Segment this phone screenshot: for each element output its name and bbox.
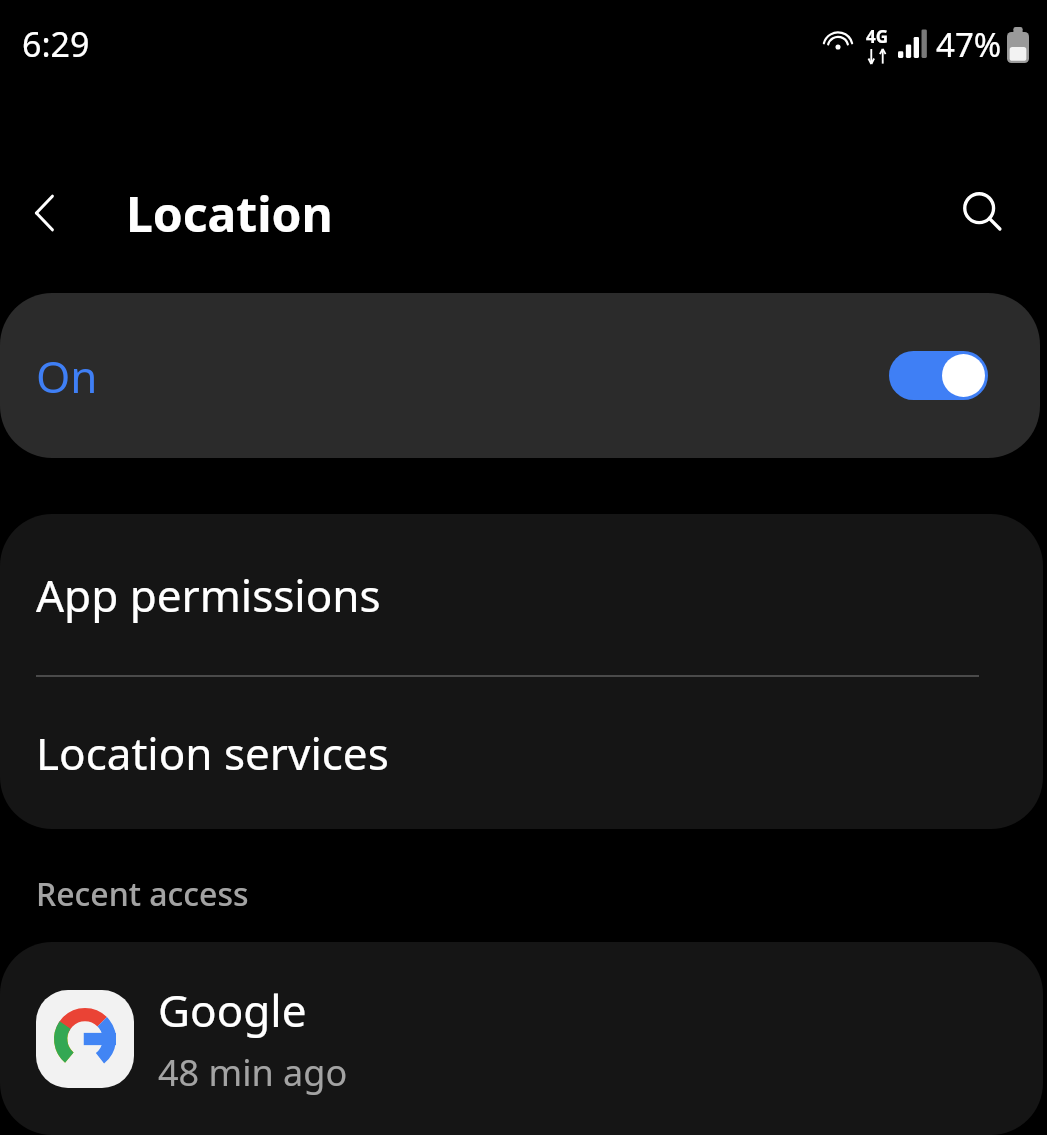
staticText: On bbox=[36, 346, 98, 406]
button[interactable]: On bbox=[0, 293, 1040, 458]
button[interactable]: App permissions bbox=[0, 514, 1043, 675]
staticText: 4G bbox=[866, 25, 889, 48]
staticText: 6:29 bbox=[22, 21, 90, 67]
button[interactable]: Search bbox=[951, 181, 1015, 245]
staticText: Google bbox=[158, 980, 307, 1040]
staticText: App permissions bbox=[36, 565, 381, 625]
staticText: Recent access bbox=[36, 872, 249, 916]
button[interactable]: Location services bbox=[0, 677, 1043, 829]
button[interactable]: Google bbox=[0, 942, 1043, 1135]
staticText: Location bbox=[126, 181, 333, 246]
staticText: 47% bbox=[936, 22, 1002, 67]
button[interactable]: Back bbox=[14, 181, 78, 245]
staticText: Location services bbox=[36, 723, 389, 783]
staticText: 48 min ago bbox=[158, 1048, 348, 1097]
